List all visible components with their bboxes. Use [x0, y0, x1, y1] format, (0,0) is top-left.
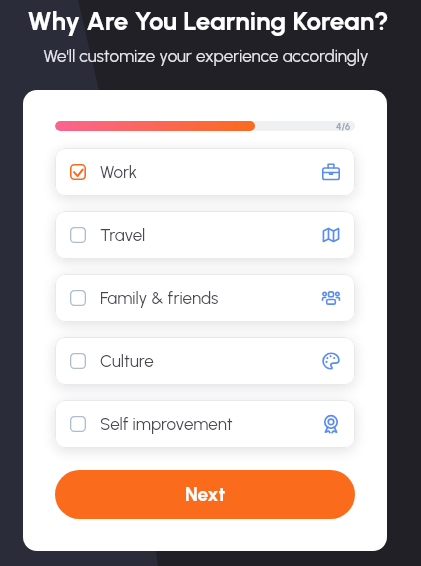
- other: Work: [322, 163, 340, 181]
- staticText: We'll customize your experience accordin…: [43, 46, 369, 66]
- staticText: Why Are You Learning Korean?: [27, 5, 389, 36]
- staticText: Next: [185, 483, 226, 506]
- staticText: Work: [100, 162, 138, 182]
- button[interactable]: Self improvement: [55, 400, 355, 448]
- button[interactable]: Travel: [55, 211, 355, 259]
- staticText: Culture: [100, 351, 154, 371]
- button[interactable]: Culture: [55, 337, 355, 385]
- button[interactable]: Next: [55, 470, 355, 519]
- other: Family & friends: [322, 289, 340, 307]
- staticText: Family & friends: [100, 288, 219, 308]
- button[interactable]: Family & friends: [55, 274, 355, 322]
- other: Travel: [322, 226, 340, 244]
- other: Self improvement: [322, 415, 340, 433]
- other: Culture: [322, 352, 340, 370]
- staticText: Self improvement: [100, 414, 233, 434]
- staticText: Travel: [100, 225, 146, 245]
- staticText: 4/6: [336, 121, 351, 131]
- button[interactable]: Work: [55, 148, 355, 196]
